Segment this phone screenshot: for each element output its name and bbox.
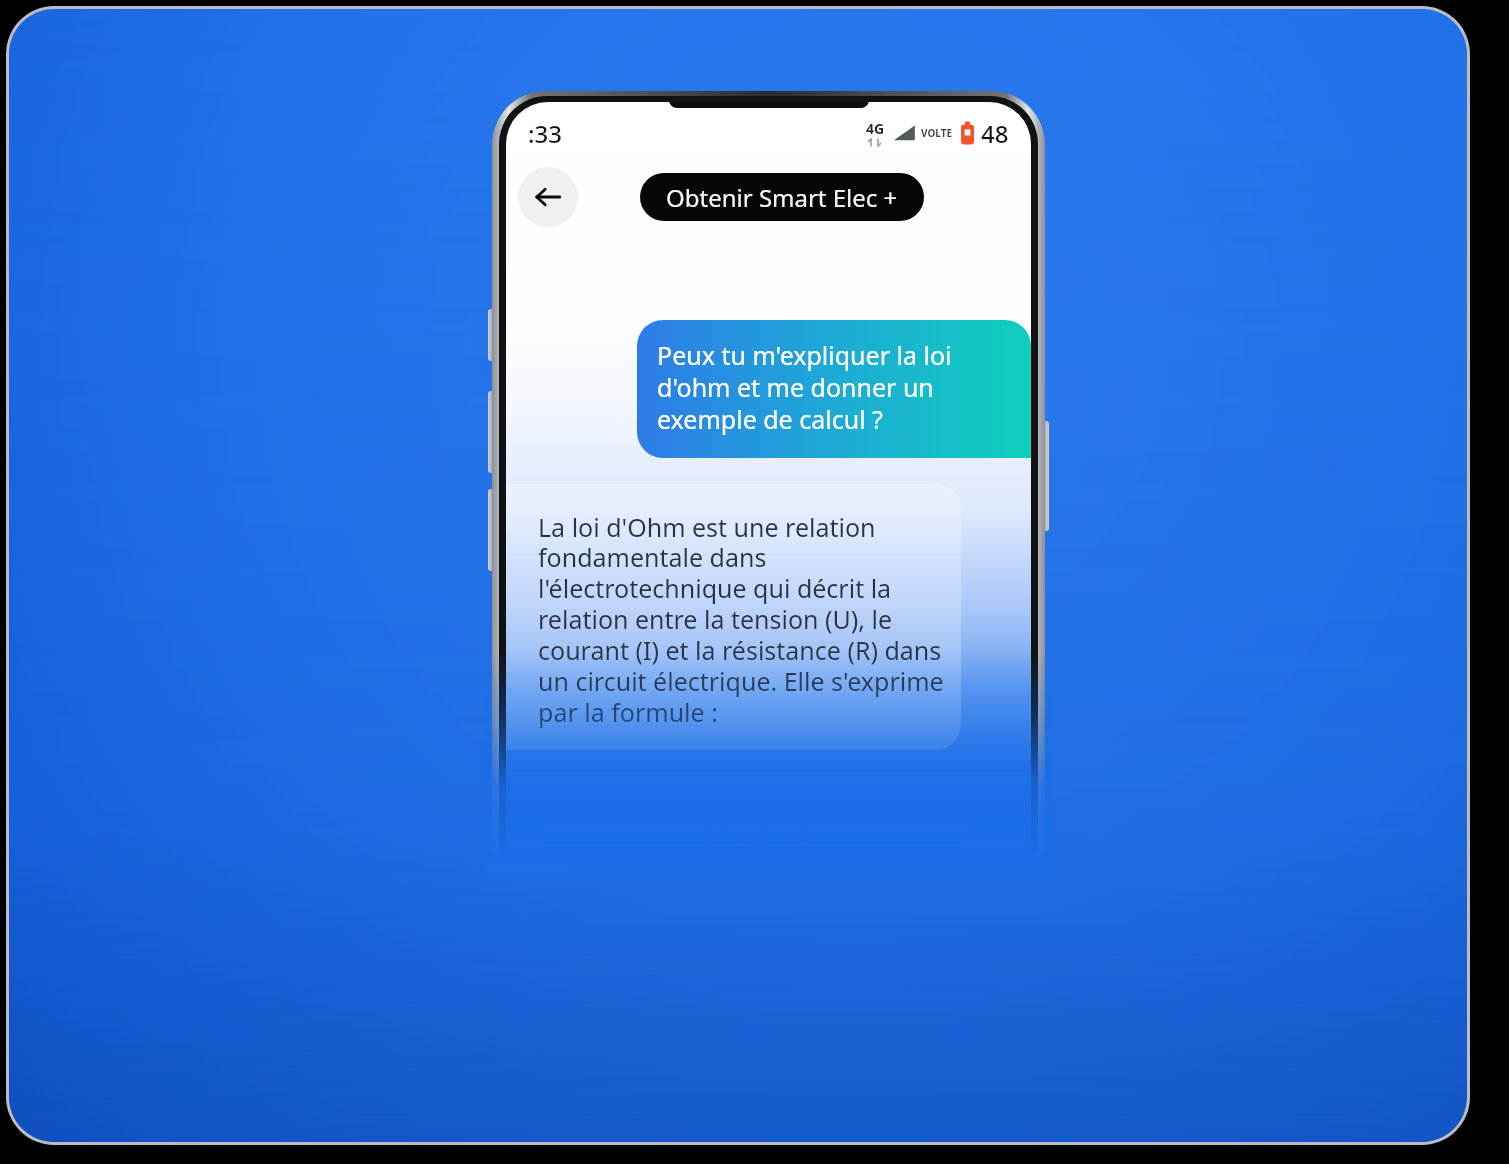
staticText: 4G bbox=[866, 119, 885, 138]
staticText: :33 bbox=[528, 117, 562, 150]
staticText: Peux tu m'expliquer la loi d'ohm et me d… bbox=[657, 338, 1015, 436]
staticText: La loi d'Ohm est une relation fondamenta… bbox=[538, 510, 945, 730]
staticText: VOLTE bbox=[921, 126, 953, 140]
button[interactable]: La loi d'Ohm est une relation fondamenta… bbox=[506, 484, 961, 750]
button[interactable]: Back bbox=[518, 167, 578, 227]
button[interactable]: Obtenir Smart Elec + bbox=[640, 173, 924, 221]
staticText: Obtenir Smart Elec + bbox=[666, 181, 898, 214]
button[interactable]: Peux tu m'expliquer la loi d'ohm et me d… bbox=[637, 320, 1031, 458]
staticText: 48 bbox=[981, 117, 1009, 150]
